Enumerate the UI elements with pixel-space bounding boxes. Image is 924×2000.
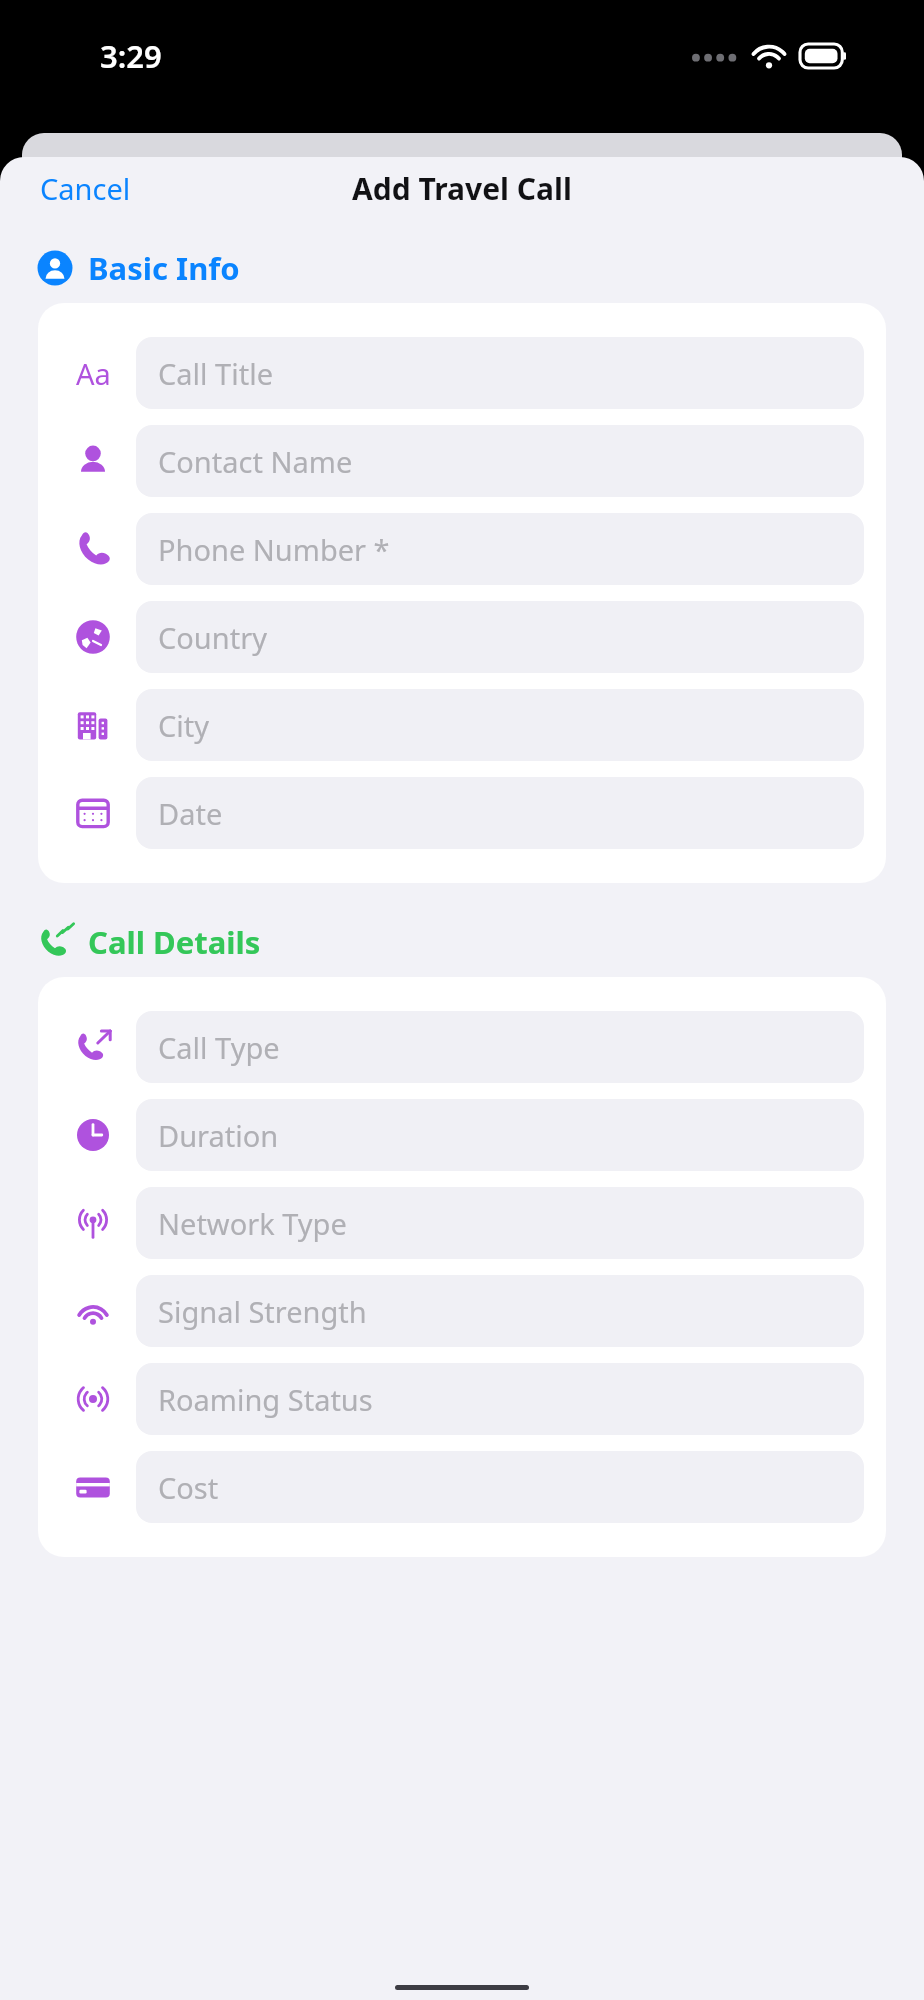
button[interactable]: Duration <box>38 1091 886 1179</box>
staticText: Contact Name <box>158 442 353 481</box>
other: Contact <box>73 441 113 481</box>
other: Country <box>73 617 113 657</box>
staticText: Call Title <box>158 354 274 393</box>
staticText: Call Type <box>158 1028 280 1067</box>
button[interactable]: Roaming status <box>38 1355 886 1443</box>
other: Cost <box>73 1467 113 1507</box>
other: City <box>73 705 113 745</box>
other: Title <box>73 353 113 393</box>
other: Call type <box>73 1027 113 1067</box>
staticText: Phone Number * <box>158 530 390 569</box>
staticText: Basic Info <box>88 247 240 289</box>
staticText: 3:29 <box>100 35 162 77</box>
other: Phone <box>73 529 113 569</box>
button[interactable]: City <box>38 681 886 769</box>
staticText: Call Details <box>88 921 261 963</box>
staticText: Cancel <box>40 169 131 208</box>
button[interactable]: Title <box>38 329 886 417</box>
button[interactable]: Signal strength <box>38 1267 886 1355</box>
button[interactable]: Contact <box>38 417 886 505</box>
other: Date <box>73 793 113 833</box>
other: Network type <box>73 1203 113 1243</box>
staticText: Cost <box>158 1468 219 1507</box>
staticText: Add Travel Call <box>352 168 572 209</box>
staticText: Network Type <box>158 1204 347 1243</box>
staticText: Signal Strength <box>158 1292 367 1331</box>
button[interactable]: Network type <box>38 1179 886 1267</box>
button[interactable]: Phone <box>38 505 886 593</box>
staticText: Duration <box>158 1116 279 1155</box>
staticText: Aa <box>76 354 111 393</box>
staticText: City <box>158 706 210 745</box>
button[interactable]: Cancel <box>0 161 145 216</box>
button[interactable]: Country <box>38 593 886 681</box>
other: Duration <box>73 1115 113 1155</box>
staticText: Roaming Status <box>158 1380 373 1419</box>
button[interactable]: Date <box>38 769 886 857</box>
button[interactable]: Call type <box>38 1003 886 1091</box>
other: Call details <box>36 923 74 961</box>
other: Basic info <box>36 249 74 287</box>
other: Roaming status <box>73 1379 113 1419</box>
button[interactable]: Cost <box>38 1443 886 1531</box>
other: Signal strength <box>73 1291 113 1331</box>
staticText: Country <box>158 618 267 657</box>
staticText: Date <box>158 794 223 833</box>
